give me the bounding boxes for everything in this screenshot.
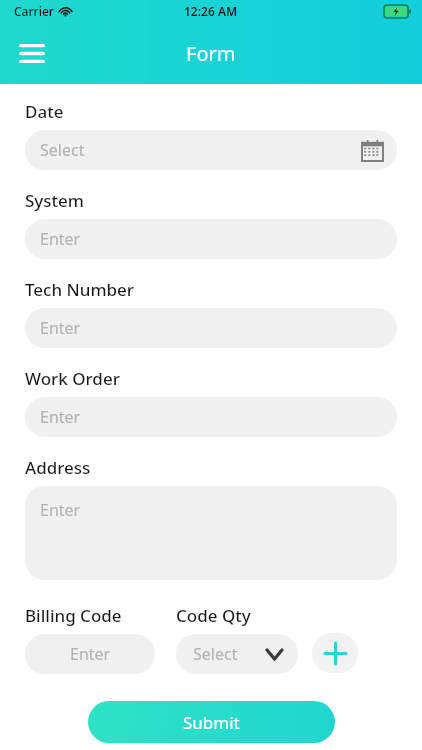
staticText: Tech Number <box>25 278 134 301</box>
staticText: Enter <box>40 228 81 250</box>
other: Pick date <box>362 140 383 161</box>
button[interactable]: Enter <box>25 219 397 259</box>
staticText: Enter <box>40 499 81 521</box>
button[interactable]: Enter <box>25 634 155 674</box>
button[interactable]: Enter <box>25 486 397 580</box>
staticText: Submit <box>183 711 240 734</box>
staticText: Select <box>40 139 85 161</box>
staticText: System <box>25 189 84 212</box>
staticText: 12:26 AM <box>184 3 238 19</box>
button[interactable]: Enter <box>25 397 397 437</box>
button[interactable]: Add billing code <box>312 633 358 673</box>
staticText: Carrier <box>14 3 54 19</box>
staticText: Select <box>193 643 238 665</box>
button[interactable]: Submit <box>88 701 335 743</box>
staticText: Enter <box>70 643 111 665</box>
staticText: Enter <box>40 317 81 339</box>
button[interactable]: Enter <box>25 308 397 348</box>
staticText: Enter <box>40 406 81 428</box>
staticText: Code Qty <box>176 604 251 627</box>
staticText: Billing Code <box>25 604 122 627</box>
staticText: Address <box>25 456 91 479</box>
staticText: Date <box>25 100 64 123</box>
button[interactable]: Select <box>176 634 298 674</box>
button[interactable]: Open navigation menu <box>10 31 54 75</box>
button[interactable]: Select <box>25 130 397 170</box>
staticText: Form <box>186 40 236 67</box>
staticText: Work Order <box>25 367 120 390</box>
